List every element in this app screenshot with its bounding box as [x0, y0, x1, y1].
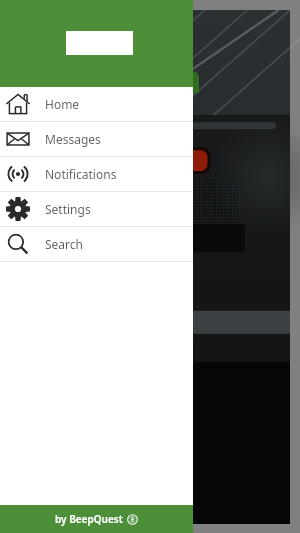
button[interactable]: Settings [0, 192, 193, 227]
staticText: Home [45, 96, 80, 112]
staticText: Notifications [45, 166, 117, 182]
staticText: by BeepQuest [55, 512, 123, 526]
button[interactable]: by BeepQuest [0, 505, 193, 533]
staticText: Messages [45, 131, 101, 147]
button[interactable]: Notifications [0, 157, 193, 192]
button[interactable]: Home [0, 87, 193, 122]
button[interactable]: Messages [0, 122, 193, 157]
staticText: Wash [94, 52, 202, 104]
button[interactable]: Search [0, 227, 193, 262]
staticText: Search [45, 236, 83, 252]
staticText: Settings [45, 201, 91, 217]
